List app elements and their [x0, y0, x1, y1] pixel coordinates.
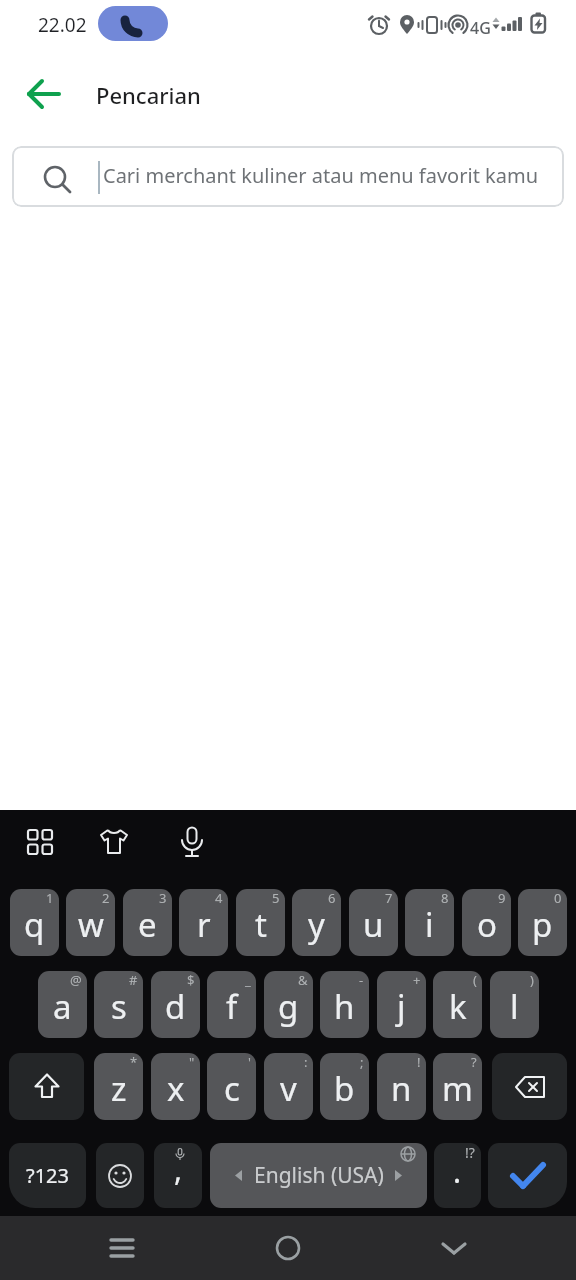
staticText: 9 — [498, 889, 506, 907]
button[interactable] — [96, 1143, 144, 1208]
staticText: . — [453, 1151, 462, 1192]
staticText: c — [224, 1066, 240, 1111]
staticText: v — [280, 1066, 297, 1111]
staticText: 8 — [441, 889, 449, 907]
staticText: d — [165, 984, 186, 1029]
staticText: ! — [417, 1053, 421, 1071]
staticText: 2 — [102, 889, 110, 907]
staticText: ?123 — [26, 1162, 69, 1189]
button[interactable]: h — [320, 971, 369, 1038]
button[interactable]: x — [151, 1053, 200, 1120]
staticText: b — [334, 1066, 355, 1111]
button[interactable] — [27, 829, 53, 855]
button[interactable]: Cari merchant kuliner atau menu favorit … — [12, 146, 564, 207]
button[interactable]: s — [94, 971, 143, 1038]
staticText: , — [174, 1149, 183, 1190]
button[interactable]: v — [264, 1053, 313, 1120]
staticText: a — [53, 984, 72, 1029]
button[interactable]: n — [377, 1053, 426, 1120]
staticText: m — [442, 1066, 473, 1111]
button[interactable] — [99, 828, 129, 856]
button[interactable]: , — [154, 1143, 202, 1208]
staticText: _ — [245, 971, 251, 989]
button[interactable] — [9, 1053, 84, 1120]
button[interactable]: p — [518, 889, 567, 956]
staticText: 6 — [328, 889, 336, 907]
staticText: 1 — [46, 889, 54, 907]
staticText: : — [304, 1053, 308, 1071]
button[interactable]: c — [207, 1053, 256, 1120]
button[interactable]: y — [292, 889, 341, 956]
staticText: e — [138, 902, 157, 947]
staticText: h — [334, 984, 355, 1029]
staticText: English (USA) — [254, 1161, 384, 1190]
staticText: ' — [248, 1053, 251, 1071]
staticText: !? — [465, 1143, 475, 1162]
staticText: z — [111, 1066, 127, 1111]
staticText: o — [477, 902, 497, 947]
staticText: x — [167, 1066, 185, 1111]
staticText: * — [130, 1053, 138, 1071]
button[interactable]: r — [179, 889, 228, 956]
staticText: 3 — [159, 889, 167, 907]
button[interactable]: q — [10, 889, 59, 956]
staticText: ( — [473, 971, 477, 989]
button[interactable] — [430, 1224, 478, 1272]
button[interactable]: English (USA) — [210, 1143, 427, 1208]
staticText: Pencarian — [96, 80, 201, 110]
staticText: n — [391, 1066, 412, 1111]
staticText: l — [510, 984, 519, 1029]
button[interactable]: l — [490, 971, 539, 1038]
staticText: + — [413, 971, 421, 989]
button[interactable] — [488, 1143, 567, 1208]
staticText: f — [226, 984, 238, 1029]
staticText: j — [397, 984, 406, 1029]
button[interactable]: d — [151, 971, 200, 1038]
staticText: ) — [530, 971, 534, 989]
button[interactable]: z — [94, 1053, 143, 1120]
staticText: u — [363, 902, 384, 947]
staticText: w — [78, 902, 104, 947]
staticText: p — [532, 902, 553, 947]
button[interactable]: g — [264, 971, 313, 1038]
button[interactable]: t — [236, 889, 285, 956]
button[interactable]: w — [66, 889, 115, 956]
staticText: # — [129, 971, 138, 989]
staticText: 0 — [554, 889, 562, 907]
staticText: 4 — [215, 889, 223, 907]
staticText: - — [359, 971, 364, 989]
staticText: q — [24, 902, 45, 947]
button[interactable] — [20, 72, 68, 116]
button[interactable]: e — [123, 889, 172, 956]
button[interactable]: f — [207, 971, 256, 1038]
button[interactable] — [264, 1224, 312, 1272]
staticText: t — [255, 902, 267, 947]
button[interactable]: m — [433, 1053, 482, 1120]
button[interactable]: . — [434, 1143, 481, 1208]
button[interactable]: k — [433, 971, 482, 1038]
staticText: r — [197, 902, 211, 947]
button[interactable]: ?123 — [9, 1143, 86, 1208]
staticText: k — [449, 984, 467, 1029]
staticText: & — [298, 971, 308, 989]
staticText: i — [425, 902, 434, 947]
staticText: $ — [187, 971, 195, 989]
button[interactable]: i — [405, 889, 454, 956]
staticText: 22.02 — [38, 12, 87, 38]
button[interactable]: o — [462, 889, 511, 956]
staticText: g — [278, 984, 299, 1029]
staticText: s — [111, 984, 127, 1029]
button[interactable] — [98, 6, 168, 41]
button[interactable] — [492, 1053, 567, 1120]
button[interactable]: b — [320, 1053, 369, 1120]
staticText: ? — [471, 1053, 477, 1071]
button[interactable] — [98, 1224, 146, 1272]
staticText: 5 — [272, 889, 280, 907]
staticText: " — [189, 1053, 195, 1071]
staticText: 4G — [470, 17, 491, 39]
staticText: Cari merchant kuliner atau menu favorit … — [103, 162, 539, 189]
button[interactable]: j — [377, 971, 426, 1038]
button[interactable]: u — [349, 889, 398, 956]
button[interactable] — [179, 826, 205, 858]
button[interactable]: a — [38, 971, 87, 1038]
